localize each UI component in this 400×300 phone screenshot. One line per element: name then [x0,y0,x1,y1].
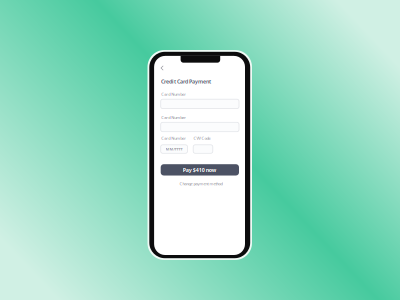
staticText: Pay $410 now [183,166,217,173]
staticText: Credit Card Payment [161,78,211,85]
staticText: Card Number [161,115,186,120]
button[interactable]: Back [157,62,168,73]
staticText: Card Number [161,136,186,141]
staticText: Card Number [161,91,186,97]
button[interactable]: Pay $410 now [161,164,239,175]
button[interactable]: Change payment method [162,180,240,187]
staticText: Change payment method [179,181,222,186]
staticText: CVV Code [193,136,210,141]
staticText: MM/YYYY [166,146,183,152]
